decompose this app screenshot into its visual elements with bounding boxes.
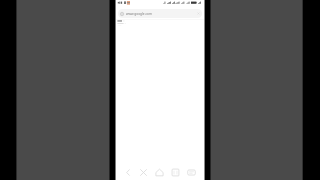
staticText: www.google.com bbox=[126, 12, 197, 16]
button[interactable]: Back bbox=[121, 165, 136, 180]
button[interactable]: Forward bbox=[136, 165, 151, 180]
button[interactable]: Tabs bbox=[167, 165, 183, 180]
button[interactable]: Home bbox=[151, 165, 167, 180]
button[interactable]: www.google.com bbox=[118, 9, 202, 18]
button[interactable]: Menu bbox=[183, 165, 199, 180]
